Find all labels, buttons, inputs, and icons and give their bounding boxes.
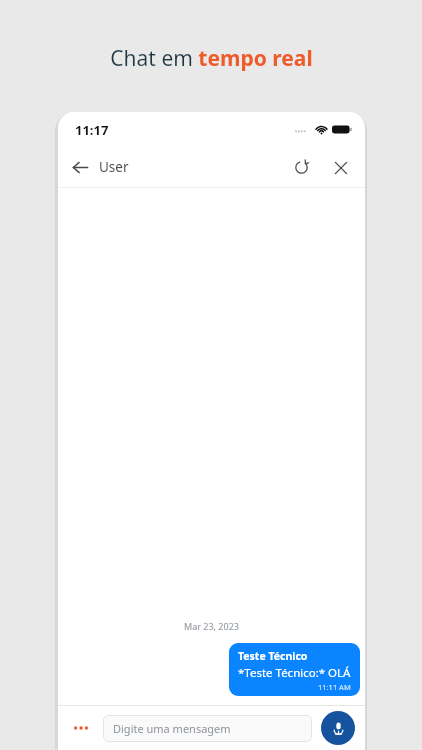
staticText: 11:11 AM (318, 682, 351, 692)
staticText: *Teste Técnico:* OLÁ (238, 665, 351, 681)
button[interactable]: Voice message (321, 711, 355, 745)
staticText: Mar 23, 2023 (184, 620, 239, 632)
staticText: Digite uma mensagem (113, 721, 231, 736)
staticText: Teste Técnico (238, 649, 308, 663)
button[interactable]: Digite uma mensagem (103, 715, 312, 742)
other: Back (72, 159, 89, 176)
button[interactable]: Teste Técnico (229, 643, 360, 696)
button[interactable]: Close (327, 154, 355, 182)
other: Close (334, 161, 348, 175)
button[interactable]: Refresh (287, 153, 316, 182)
staticText: User (99, 158, 129, 176)
button[interactable]: Back (58, 152, 137, 182)
staticText: 11:17 (75, 121, 109, 139)
button[interactable]: More options (68, 716, 95, 740)
other: More options (74, 724, 89, 732)
staticText: Chat em tempo real (110, 44, 313, 73)
other: Refresh (294, 160, 309, 175)
